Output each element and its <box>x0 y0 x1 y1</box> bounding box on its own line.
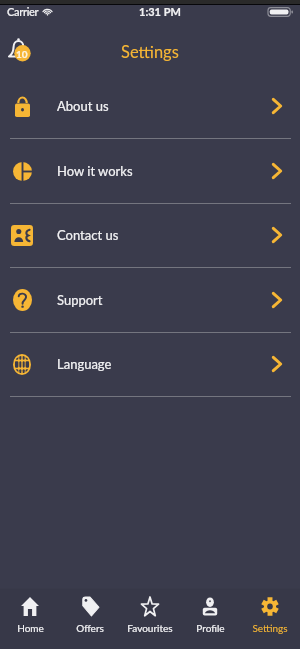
button[interactable]: Offers <box>60 591 120 647</box>
button[interactable]: About us <box>0 74 300 139</box>
staticText: Home <box>17 622 44 634</box>
button[interactable]: How it works <box>0 139 300 204</box>
staticText: Language <box>57 356 112 372</box>
staticText: Carrier <box>7 5 39 18</box>
staticText: 1:31 PM <box>139 5 181 18</box>
button[interactable]: Contact us <box>0 203 300 268</box>
staticText: How it works <box>57 163 133 179</box>
button[interactable]: Home <box>0 591 60 647</box>
button[interactable]: Support <box>0 268 300 333</box>
staticText: Settings <box>121 42 179 62</box>
button[interactable]: Settings <box>240 591 300 647</box>
button[interactable]: Language <box>0 332 300 397</box>
staticText: Contact us <box>57 227 119 243</box>
button[interactable]: Profile <box>180 591 240 647</box>
staticText: Profile <box>196 622 225 634</box>
staticText: 10 <box>16 48 28 60</box>
button[interactable]: Favourites <box>120 591 180 647</box>
staticText: Favourites <box>127 622 173 634</box>
staticText: Support <box>57 292 103 308</box>
staticText: About us <box>57 98 109 114</box>
staticText: Settings <box>252 622 288 634</box>
button[interactable]: Notifications <box>1 33 41 73</box>
staticText: Offers <box>76 622 104 634</box>
